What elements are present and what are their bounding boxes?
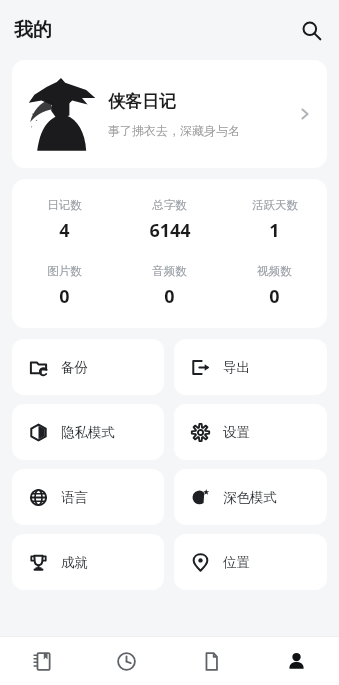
staticText: 总字数 bbox=[152, 198, 187, 212]
staticText: 0 bbox=[164, 284, 175, 309]
button[interactable]: 语言 bbox=[12, 469, 164, 525]
staticText: 音频数 bbox=[152, 264, 187, 278]
button[interactable]: History bbox=[84, 637, 169, 685]
staticText: 0 bbox=[269, 284, 280, 309]
staticText: 事了拂衣去，深藏身与名 bbox=[108, 123, 240, 138]
staticText: 导出 bbox=[223, 359, 250, 376]
button[interactable]: 导出 bbox=[174, 339, 327, 395]
staticText: 视频数 bbox=[257, 264, 292, 278]
button[interactable]: 成就 bbox=[12, 534, 164, 590]
button[interactable]: Notes bbox=[169, 637, 254, 685]
button[interactable]: Profile bbox=[254, 637, 339, 685]
button[interactable]: Journal bbox=[0, 637, 84, 685]
staticText: 0 bbox=[59, 284, 70, 309]
button[interactable]: 侠客日记 bbox=[12, 60, 327, 168]
button[interactable]: 位置 bbox=[174, 534, 327, 590]
staticText: 成就 bbox=[61, 554, 88, 571]
staticText: 1 bbox=[269, 218, 280, 243]
staticText: 日记数 bbox=[47, 198, 82, 212]
staticText: 隐私模式 bbox=[61, 424, 115, 441]
staticText: 位置 bbox=[223, 554, 250, 571]
staticText: 4 bbox=[59, 218, 70, 243]
button[interactable]: 隐私模式 bbox=[12, 404, 164, 460]
staticText: 图片数 bbox=[47, 264, 82, 278]
button[interactable]: 深色模式 bbox=[174, 469, 327, 525]
staticText: 设置 bbox=[223, 424, 250, 441]
staticText: 我的 bbox=[14, 18, 52, 42]
staticText: 语言 bbox=[61, 489, 88, 506]
staticText: 备份 bbox=[61, 359, 88, 376]
staticText: 侠客日记 bbox=[108, 91, 176, 112]
button[interactable]: 备份 bbox=[12, 339, 164, 395]
button[interactable]: Search bbox=[291, 10, 331, 50]
staticText: 6144 bbox=[149, 218, 191, 243]
staticText: 深色模式 bbox=[223, 489, 277, 506]
staticText: 活跃天数 bbox=[252, 198, 298, 212]
button[interactable]: 设置 bbox=[174, 404, 327, 460]
